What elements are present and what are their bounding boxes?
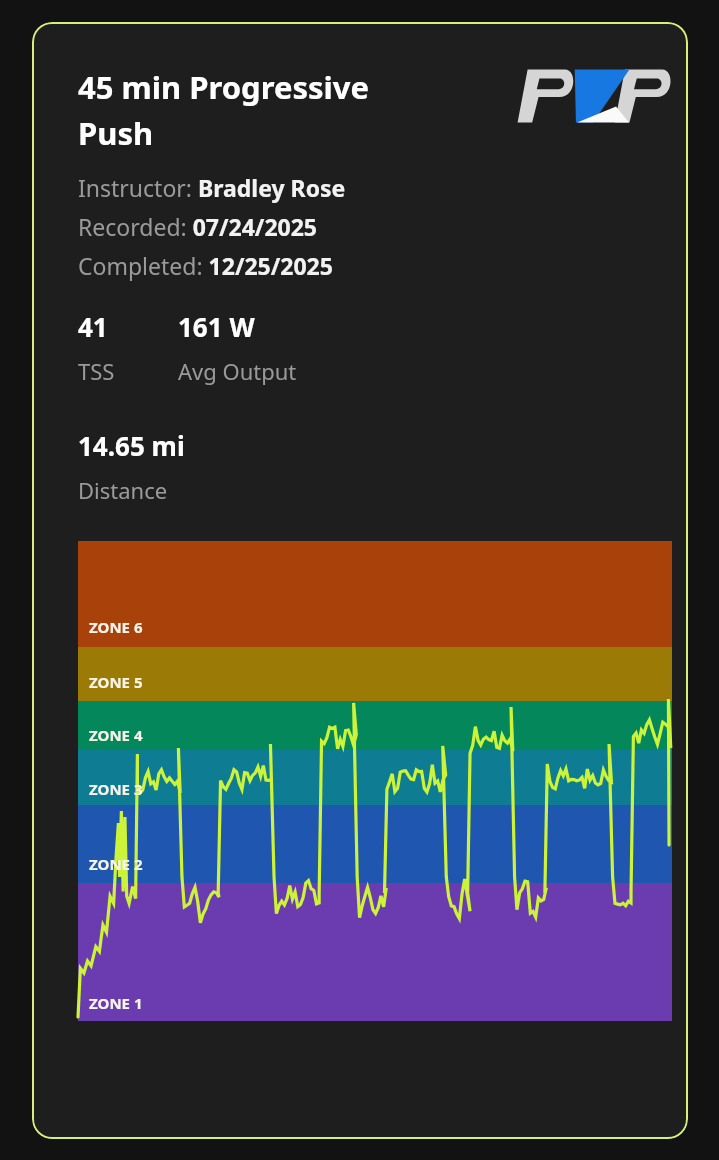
staticText: ZONE 4 bbox=[89, 725, 143, 745]
staticText: 45 min Progressive Push bbox=[78, 66, 512, 154]
button[interactable]: Power zone chart bbox=[78, 541, 672, 1021]
staticText: ZONE 2 bbox=[89, 854, 143, 874]
staticText: Distance bbox=[78, 475, 168, 505]
staticText: 161 W bbox=[178, 309, 255, 344]
button[interactable]: 45 min Progressive Push bbox=[32, 22, 688, 1139]
staticText: ZONE 5 bbox=[89, 672, 143, 692]
staticText: 14.65 mi bbox=[78, 428, 185, 463]
staticText: TSS bbox=[78, 356, 115, 386]
staticText: 41 bbox=[78, 309, 108, 344]
staticText: ZONE 1 bbox=[89, 993, 143, 1013]
other: PZP logo bbox=[520, 66, 672, 126]
staticText: Avg Output bbox=[178, 356, 297, 386]
staticText: Completed: 12/25/2025 bbox=[78, 250, 333, 281]
staticText: ZONE 6 bbox=[89, 617, 143, 637]
staticText: Recorded: 07/24/2025 bbox=[78, 211, 318, 242]
staticText: Instructor: Bradley Rose bbox=[78, 172, 346, 203]
staticText: ZONE 3 bbox=[89, 779, 143, 799]
